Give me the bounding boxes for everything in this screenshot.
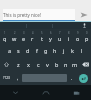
button[interactable]: Voice input [78, 22, 91, 29]
staticText: w [12, 35, 17, 42]
staticText: v [46, 61, 49, 68]
button[interactable]: 2 [10, 29, 19, 43]
staticText: e [22, 35, 26, 42]
button[interactable]: 4 [28, 29, 37, 43]
button[interactable]: Back [0, 85, 31, 100]
staticText: c [37, 61, 40, 68]
staticText: n [64, 61, 68, 68]
staticText: k [71, 47, 74, 54]
staticText: ?123 [3, 76, 10, 80]
button[interactable]: 3 [19, 29, 28, 43]
staticText: q [3, 35, 7, 42]
button[interactable]: Shift [0, 57, 13, 71]
staticText: t [41, 35, 43, 42]
button[interactable]: z [13, 57, 23, 71]
button[interactable]: c [33, 57, 43, 71]
staticText: f [36, 47, 38, 54]
staticText: 2 [14, 31, 16, 35]
staticText: h [53, 47, 57, 54]
button[interactable]: l [77, 43, 86, 57]
staticText: d [26, 47, 30, 54]
staticText: 0 [86, 31, 88, 35]
staticText: a [8, 47, 12, 54]
button[interactable]: k [68, 43, 77, 57]
staticText: m [72, 61, 78, 68]
staticText: y [49, 35, 52, 42]
staticText: . [71, 75, 73, 82]
staticText: 8 [68, 31, 70, 35]
staticText: g [44, 47, 48, 54]
staticText: s [17, 47, 20, 54]
button[interactable]: v [43, 57, 52, 71]
staticText: b [55, 61, 59, 68]
button[interactable]: j [59, 43, 68, 57]
button[interactable]: . [67, 71, 76, 85]
staticText: u [58, 35, 62, 42]
button[interactable]: s [14, 43, 23, 57]
button[interactable]: Backspace [79, 57, 91, 71]
button[interactable]: Send [77, 9, 91, 21]
button[interactable]: f [32, 43, 41, 57]
button[interactable]: 5 [37, 29, 46, 43]
staticText: 3 [23, 31, 25, 35]
button[interactable]: d [23, 43, 32, 57]
staticText: 1 [4, 31, 6, 35]
staticText: 4 [32, 31, 34, 35]
button[interactable]: Enter [76, 71, 91, 85]
staticText: This is pretty nice! [3, 12, 41, 18]
button[interactable]: b [52, 57, 61, 71]
staticText: x [27, 61, 30, 68]
staticText: l [81, 47, 83, 54]
button[interactable]: h [50, 43, 59, 57]
button[interactable]: Suggestion [52, 22, 78, 29]
staticText: i [68, 35, 70, 42]
staticText: 9 [77, 31, 79, 35]
button[interactable]: 8 [64, 29, 73, 43]
button[interactable]: ?123 [0, 71, 13, 85]
button[interactable]: m [70, 57, 79, 71]
button[interactable]: g [41, 43, 50, 57]
button[interactable]: This is pretty nice! [3, 9, 75, 21]
button[interactable]: , [13, 71, 22, 85]
staticText: o [76, 35, 80, 42]
button[interactable]: Recents [61, 85, 91, 100]
staticText: z [17, 61, 20, 68]
button[interactable]: x [23, 57, 33, 71]
button[interactable]: 1 [0, 29, 10, 43]
button[interactable]: 9 [73, 29, 82, 43]
button[interactable]: 7 [55, 29, 64, 43]
button[interactable]: Suggestion [26, 22, 52, 29]
staticText: j [63, 47, 65, 54]
staticText: 5 [41, 31, 43, 35]
button[interactable]: Home [31, 85, 61, 100]
staticText: , [17, 75, 19, 82]
staticText: 6 [50, 31, 52, 35]
button[interactable]: n [61, 57, 70, 71]
button[interactable]: a [5, 43, 14, 57]
staticText: 7 [59, 31, 61, 35]
staticText: r [31, 35, 34, 42]
button[interactable]: 6 [46, 29, 55, 43]
button[interactable]: 0 [82, 29, 91, 43]
staticText: p [85, 35, 89, 42]
